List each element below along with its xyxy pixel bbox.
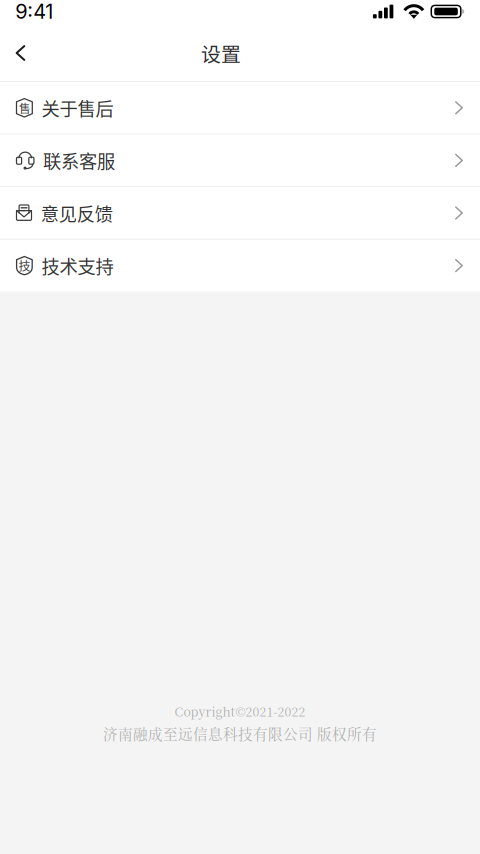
- staticText: 技术支持: [41, 252, 113, 279]
- button[interactable]: 技: [0, 240, 480, 291]
- staticText: 9:41: [15, 0, 53, 24]
- button[interactable]: Back: [0, 35, 41, 71]
- staticText: 售: [19, 99, 30, 116]
- staticText: Copyright©2021-2022: [174, 702, 305, 720]
- staticText: 联系客服: [43, 147, 115, 174]
- staticText: 设置: [201, 39, 241, 67]
- button[interactable]: 意见反馈: [0, 187, 480, 239]
- staticText: 济南融成至远信息科技有限公司 版权所有: [103, 723, 377, 744]
- staticText: 意见反馈: [41, 200, 113, 226]
- staticText: 关于售后: [41, 95, 113, 121]
- button[interactable]: 联系客服: [0, 135, 480, 186]
- staticText: 技: [18, 257, 30, 274]
- button[interactable]: 售: [0, 82, 480, 134]
